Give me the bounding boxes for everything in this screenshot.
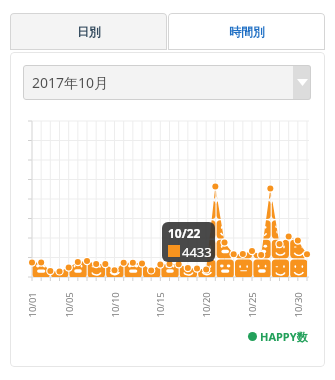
button[interactable]: HAPPY数	[248, 329, 308, 344]
staticText: 10/10	[108, 291, 121, 317]
staticText: 日別	[77, 24, 101, 39]
staticText: 10/01	[25, 291, 38, 317]
staticText: 10/15	[153, 291, 166, 317]
staticText: HAPPY数	[260, 329, 308, 344]
button[interactable]: 日別	[10, 13, 167, 50]
staticText: 10/25	[245, 291, 258, 317]
other: Open month selector	[293, 65, 311, 100]
staticText: 10/22	[168, 225, 201, 241]
staticText: 10/05	[62, 291, 75, 317]
button[interactable]: 時間別	[168, 13, 325, 50]
button[interactable]: 2017年10月	[23, 65, 311, 100]
staticText: 2017年10月	[32, 73, 109, 92]
staticText: 時間別	[229, 24, 265, 39]
staticText: 10/30	[291, 291, 304, 317]
staticText: 4433	[182, 243, 212, 261]
staticText: 10/20	[199, 291, 212, 317]
